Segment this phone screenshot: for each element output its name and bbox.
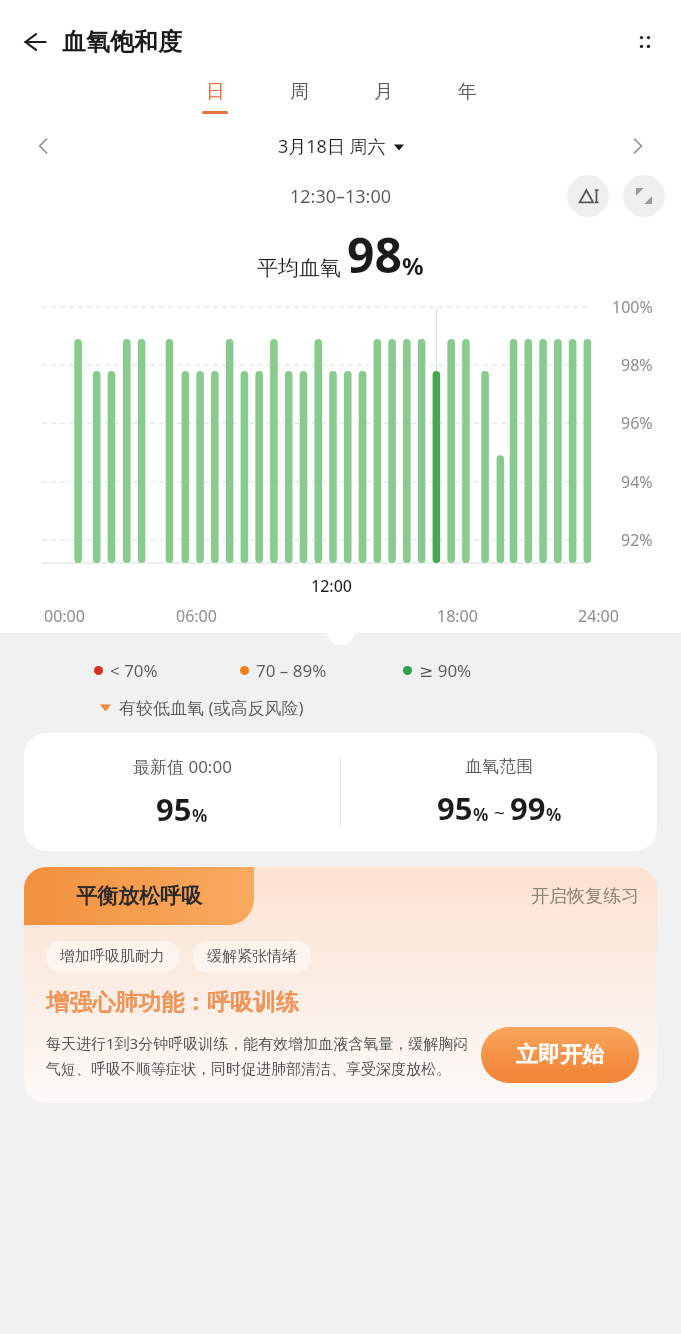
button[interactable]: 日 <box>173 78 257 116</box>
staticText: 24:00 <box>578 605 619 627</box>
staticText: 血氧饱和度 <box>62 27 182 57</box>
staticText: 平衡放松呼吸 <box>76 883 202 909</box>
staticText: ~ <box>489 800 510 826</box>
staticText: % <box>546 803 562 826</box>
staticText: 12:00 <box>311 575 352 597</box>
staticText: 立即开始 <box>516 1041 604 1069</box>
staticText: 有较低血氧 (或高反风险) <box>119 696 304 719</box>
staticText: ≥ 90% <box>419 659 472 682</box>
staticText: 月 <box>374 80 393 104</box>
staticText: 平均血氧 <box>257 255 341 281</box>
staticText: % <box>473 803 489 826</box>
button[interactable]: More options <box>621 18 669 66</box>
button[interactable]: Expand chart <box>623 175 665 217</box>
staticText: 血氧范围 <box>465 756 533 777</box>
button[interactable]: 立即开始 <box>481 1027 639 1083</box>
button[interactable]: 最新值 00:00 <box>24 733 657 851</box>
staticText: 年 <box>458 80 477 104</box>
staticText: 周 <box>290 80 309 104</box>
staticText: 增加呼吸肌耐力 <box>60 947 165 966</box>
staticText: 92% <box>621 529 653 551</box>
button[interactable]: Back <box>10 18 58 66</box>
staticText: 增强心肺功能：呼吸训练 <box>46 988 299 1017</box>
button[interactable]: < 70% <box>94 659 158 682</box>
staticText: 缓解紧张情绪 <box>207 947 297 966</box>
button[interactable]: Next day <box>615 124 659 168</box>
staticText: 95 <box>156 788 192 830</box>
staticText: 100% <box>612 296 653 318</box>
staticText: 最新值 00:00 <box>133 755 232 778</box>
staticText: 96% <box>621 412 653 434</box>
button[interactable]: Previous day <box>22 124 66 168</box>
staticText: 06:00 <box>176 605 217 627</box>
staticText: % <box>192 804 208 827</box>
staticText: 95 <box>437 787 473 829</box>
staticText: 99 <box>510 787 546 829</box>
staticText: 70 – 89% <box>256 659 327 682</box>
staticText: 12:30–13:00 <box>290 184 392 209</box>
staticText: < 70% <box>110 659 158 682</box>
button[interactable]: 平衡放松呼吸 <box>24 867 657 1103</box>
staticText: 98% <box>621 354 653 376</box>
button[interactable]: 3月18日 周六 <box>66 134 615 159</box>
button[interactable]: 开启恢复练习 <box>531 885 639 908</box>
staticText: % <box>402 249 424 282</box>
staticText: 98 <box>347 222 402 287</box>
button[interactable]: 年 <box>425 78 509 116</box>
staticText: 日 <box>206 80 225 104</box>
button[interactable]: 周 <box>257 78 341 116</box>
button[interactable]: ≥ 90% <box>403 659 472 682</box>
staticText: 94% <box>621 471 653 493</box>
staticText: 3月18日 周六 <box>278 134 386 159</box>
staticText: 18:00 <box>437 605 478 627</box>
staticText: 每天进行1到3分钟呼吸训练，能有效增加血液含氧量，缓解胸闷气短、呼吸不顺等症状，… <box>46 1033 469 1078</box>
staticText: 00:00 <box>44 605 85 627</box>
button[interactable]: 70 – 89% <box>240 659 327 682</box>
button[interactable]: Measure blood oxygen <box>567 175 609 217</box>
button[interactable]: 月 <box>341 78 425 116</box>
